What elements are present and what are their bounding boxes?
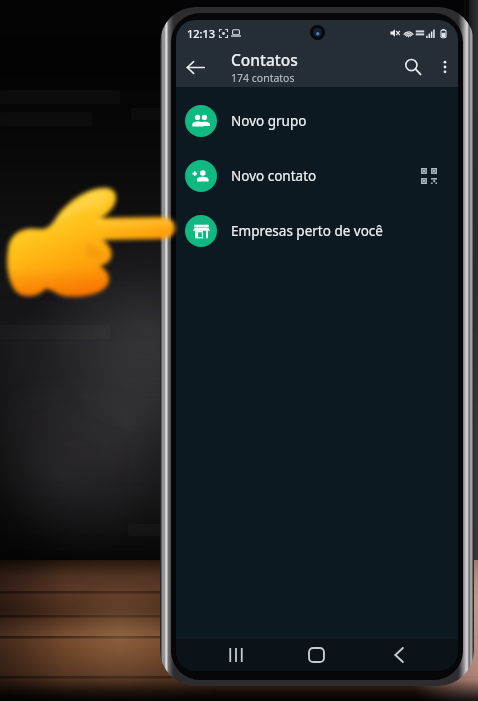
button[interactable]: Empresas perto de você (176, 203, 458, 258)
staticText: Novo contato (231, 167, 317, 185)
staticText: Contatos (231, 49, 298, 70)
button[interactable]: Back (176, 48, 214, 86)
staticText: Novo grupo (231, 112, 307, 130)
staticText: 12:13 (187, 26, 216, 41)
button[interactable]: Novo contato (176, 148, 458, 203)
staticText: 174 contatos (231, 71, 295, 85)
button[interactable]: Back (377, 639, 421, 671)
button[interactable]: Search (394, 46, 432, 87)
button[interactable]: QR code (416, 163, 442, 189)
button[interactable]: Home (294, 639, 338, 671)
staticText: Empresas perto de você (231, 222, 383, 240)
button[interactable]: Novo grupo (176, 93, 458, 148)
button[interactable]: More options (432, 46, 458, 87)
button[interactable]: Recents (214, 639, 258, 671)
